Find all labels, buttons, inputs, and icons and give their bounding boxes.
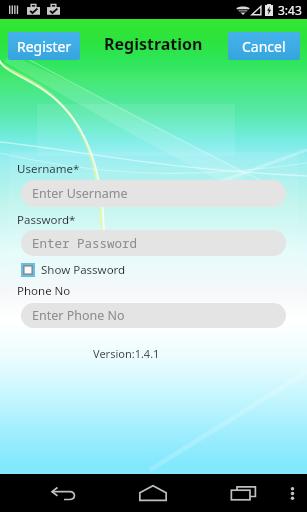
staticText: Enter Password: [32, 235, 138, 252]
button[interactable]: Enter Password: [21, 230, 286, 256]
staticText: Password*: [17, 212, 76, 228]
staticText: Register: [17, 37, 72, 56]
button[interactable]: Enter Username: [21, 180, 286, 207]
button[interactable]: Home: [134, 480, 172, 506]
button[interactable]: Cancel: [228, 32, 300, 60]
button[interactable]: Back: [46, 482, 81, 504]
staticText: Username*: [17, 161, 80, 177]
button[interactable]: Enter Phone No: [21, 303, 286, 328]
staticText: Version:1.4.1: [93, 346, 160, 361]
button[interactable]: More options: [284, 482, 300, 504]
staticText: 3:43: [278, 2, 302, 18]
button[interactable]: Show Password: [21, 262, 126, 278]
button[interactable]: Register: [8, 32, 80, 60]
staticText: Enter Phone No: [32, 307, 125, 324]
staticText: Enter Username: [32, 185, 128, 202]
staticText: Cancel: [242, 37, 286, 56]
staticText: Show Password: [41, 262, 126, 278]
staticText: Registration: [104, 33, 203, 55]
staticText: Phone No: [17, 283, 71, 299]
button[interactable]: Recent apps: [226, 481, 261, 505]
